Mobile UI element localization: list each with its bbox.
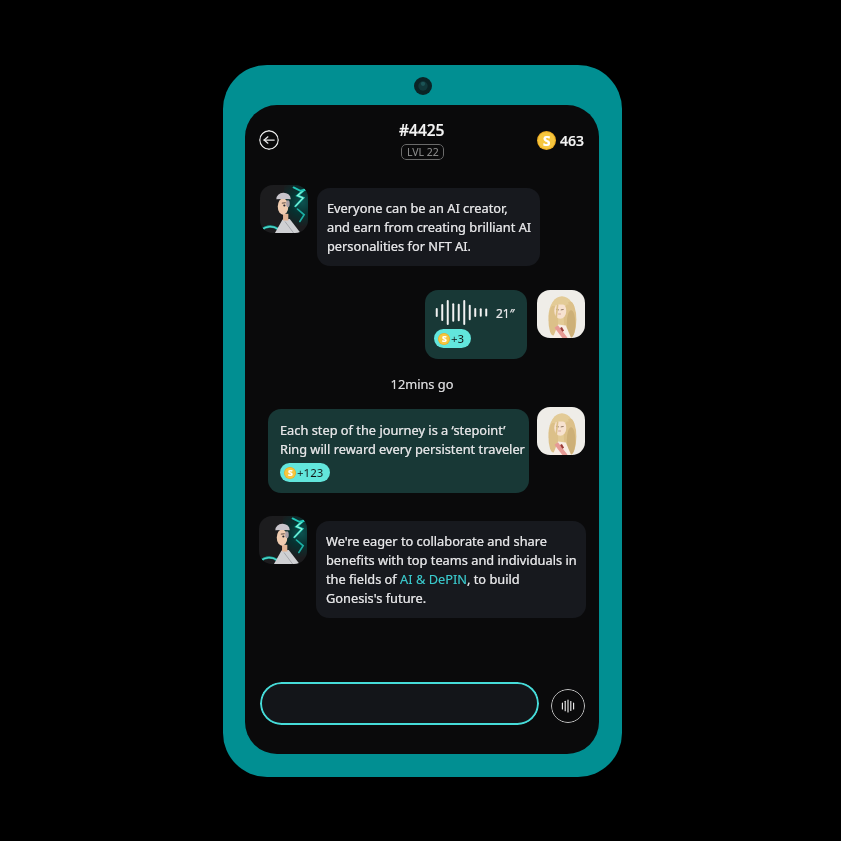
button[interactable]: Back — [259, 130, 279, 150]
staticText: S — [442, 333, 447, 345]
button[interactable]: 21″ — [425, 290, 527, 359]
button[interactable]: Open profile — [537, 290, 585, 338]
staticText: Everyone can be an AI creator, and earn … — [327, 199, 532, 254]
button[interactable]: We're eager to collaborate and share ben… — [316, 521, 586, 618]
staticText: Each step of the journey is a ‘stepoint’… — [280, 421, 525, 457]
button[interactable]: S — [280, 463, 330, 482]
button[interactable]: Open profile — [537, 407, 585, 455]
button[interactable]: Record voice message — [551, 689, 585, 723]
staticText: LVL 22 — [407, 145, 439, 159]
staticText: 463 — [560, 131, 585, 150]
button[interactable]: Open profile — [259, 516, 307, 564]
button[interactable]: S — [434, 329, 471, 348]
button[interactable]: Message input — [260, 682, 539, 725]
staticText: S — [543, 131, 551, 150]
staticText: 12mins go — [245, 375, 599, 392]
staticText: S — [288, 467, 293, 479]
staticText: We're eager to collaborate and share ben… — [326, 532, 577, 606]
staticText: +3 — [451, 331, 465, 347]
staticText: +123 — [297, 465, 324, 481]
button[interactable]: S — [537, 131, 585, 150]
button[interactable]: Everyone can be an AI creator, and earn … — [317, 188, 540, 266]
button[interactable]: Open profile — [260, 185, 308, 233]
staticText: 21″ — [496, 305, 515, 321]
staticText: #4425 — [399, 119, 445, 140]
button[interactable]: Each step of the journey is a ‘stepoint’… — [268, 409, 529, 493]
